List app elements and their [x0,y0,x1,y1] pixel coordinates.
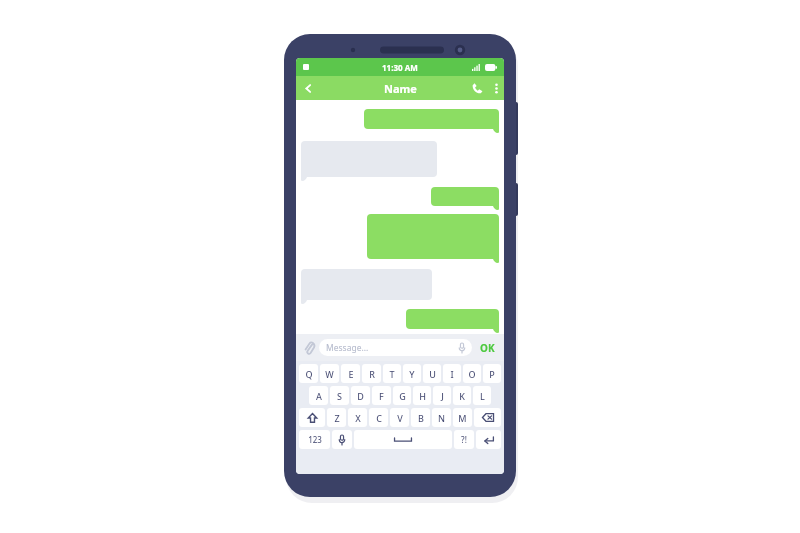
staticText: R [369,368,375,380]
button[interactable]: N [432,408,451,427]
button[interactable]: X [348,408,367,427]
button[interactable]: C [369,408,388,427]
button[interactable]: R [362,364,381,383]
staticText: OK [480,341,495,355]
button[interactable]: Backspace [474,408,501,427]
staticText: F [379,390,384,402]
button[interactable]: G [393,386,411,405]
button[interactable]: 123 [299,430,330,449]
button[interactable]: Y [403,364,421,383]
staticText: Message... [326,342,459,354]
button[interactable]: J [433,386,451,405]
button[interactable]: Q [299,364,318,383]
button[interactable]: S [330,386,349,405]
staticText: C [376,412,382,424]
staticText: J [441,390,444,402]
button[interactable]: L [473,386,491,405]
staticText: V [397,412,403,424]
button[interactable]: V [390,408,409,427]
button[interactable]: Attach file [301,337,317,359]
button[interactable]: D [351,386,370,405]
button[interactable]: M [453,408,472,427]
staticText: H [419,390,426,402]
staticText: ?! [461,434,467,445]
button[interactable]: T [383,364,401,383]
staticText: G [399,390,406,402]
button[interactable]: P [483,364,501,383]
staticText: T [389,368,395,380]
button[interactable]: I [443,364,461,383]
button[interactable] [364,109,499,134]
button[interactable]: ?! [454,430,474,449]
staticText: S [337,390,342,402]
button[interactable]: B [411,408,430,427]
button[interactable]: Voice input [332,430,352,449]
staticText: U [429,368,436,380]
button[interactable]: W [320,364,339,383]
button[interactable]: Call [466,76,488,100]
staticText: Y [409,368,415,380]
staticText: W [325,368,334,380]
staticText: P [489,368,495,380]
button[interactable]: Enter [476,430,501,449]
button[interactable]: Space [354,430,452,449]
button[interactable]: Back [296,76,320,100]
staticText: O [468,368,476,380]
button[interactable]: O [463,364,481,383]
staticText: E [348,368,354,380]
staticText: Q [305,368,313,380]
button[interactable] [301,141,437,182]
button[interactable]: Z [327,408,346,427]
button[interactable]: K [453,386,471,405]
staticText: A [316,390,322,402]
button[interactable]: F [372,386,391,405]
button[interactable]: OK [475,337,499,359]
staticText: M [458,412,467,424]
button[interactable]: Message... [319,339,472,356]
staticText: K [459,390,465,402]
button[interactable]: More options [488,76,504,100]
staticText: 123 [308,434,322,445]
button[interactable]: U [423,364,441,383]
button[interactable]: H [413,386,431,405]
button[interactable]: E [341,364,360,383]
staticText: X [355,412,361,424]
button[interactable] [367,214,499,264]
staticText: I [450,368,454,380]
staticText: B [418,412,424,424]
staticText: 11:30 AM [382,62,418,73]
staticText: Z [334,412,340,424]
button[interactable]: A [309,386,328,405]
button[interactable]: Shift [299,408,325,427]
staticText: D [357,390,364,402]
staticText: N [438,412,445,424]
button[interactable] [431,187,499,211]
button[interactable] [406,309,499,334]
button[interactable] [301,269,432,305]
staticText: Name [384,81,417,96]
staticText: L [480,390,485,402]
